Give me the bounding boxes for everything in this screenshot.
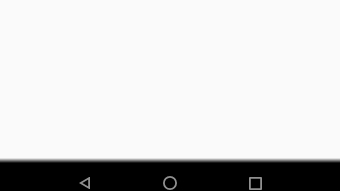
button[interactable]: Home: [147, 166, 193, 191]
button[interactable]: Back: [61, 166, 107, 191]
button[interactable]: Recent apps: [232, 166, 278, 191]
